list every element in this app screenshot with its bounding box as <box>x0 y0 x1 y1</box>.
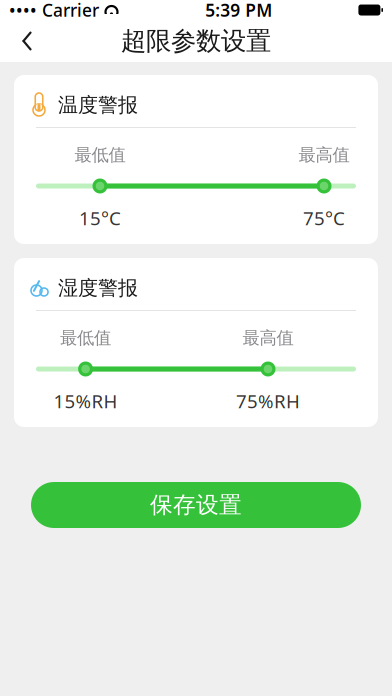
staticText: 湿度警报 <box>58 276 138 300</box>
staticText: 15%RH <box>54 389 118 413</box>
staticText: 最低值 <box>74 144 125 166</box>
button[interactable]: Back <box>0 20 54 62</box>
staticText: 75°C <box>303 206 345 230</box>
staticText: 最高值 <box>298 144 349 166</box>
staticText: 超限参数设置 <box>121 25 271 56</box>
staticText: 5:39 PM <box>205 0 272 21</box>
button[interactable]: 保存设置 <box>31 482 361 528</box>
staticText: 最低值 <box>60 327 111 349</box>
staticText: 最高值 <box>242 327 293 349</box>
staticText: 15°C <box>79 206 121 230</box>
staticText: •••• Carrier <box>9 0 99 21</box>
staticText: 温度警报 <box>58 93 138 117</box>
staticText: 75%RH <box>236 389 300 413</box>
staticText: 保存设置 <box>150 491 242 519</box>
